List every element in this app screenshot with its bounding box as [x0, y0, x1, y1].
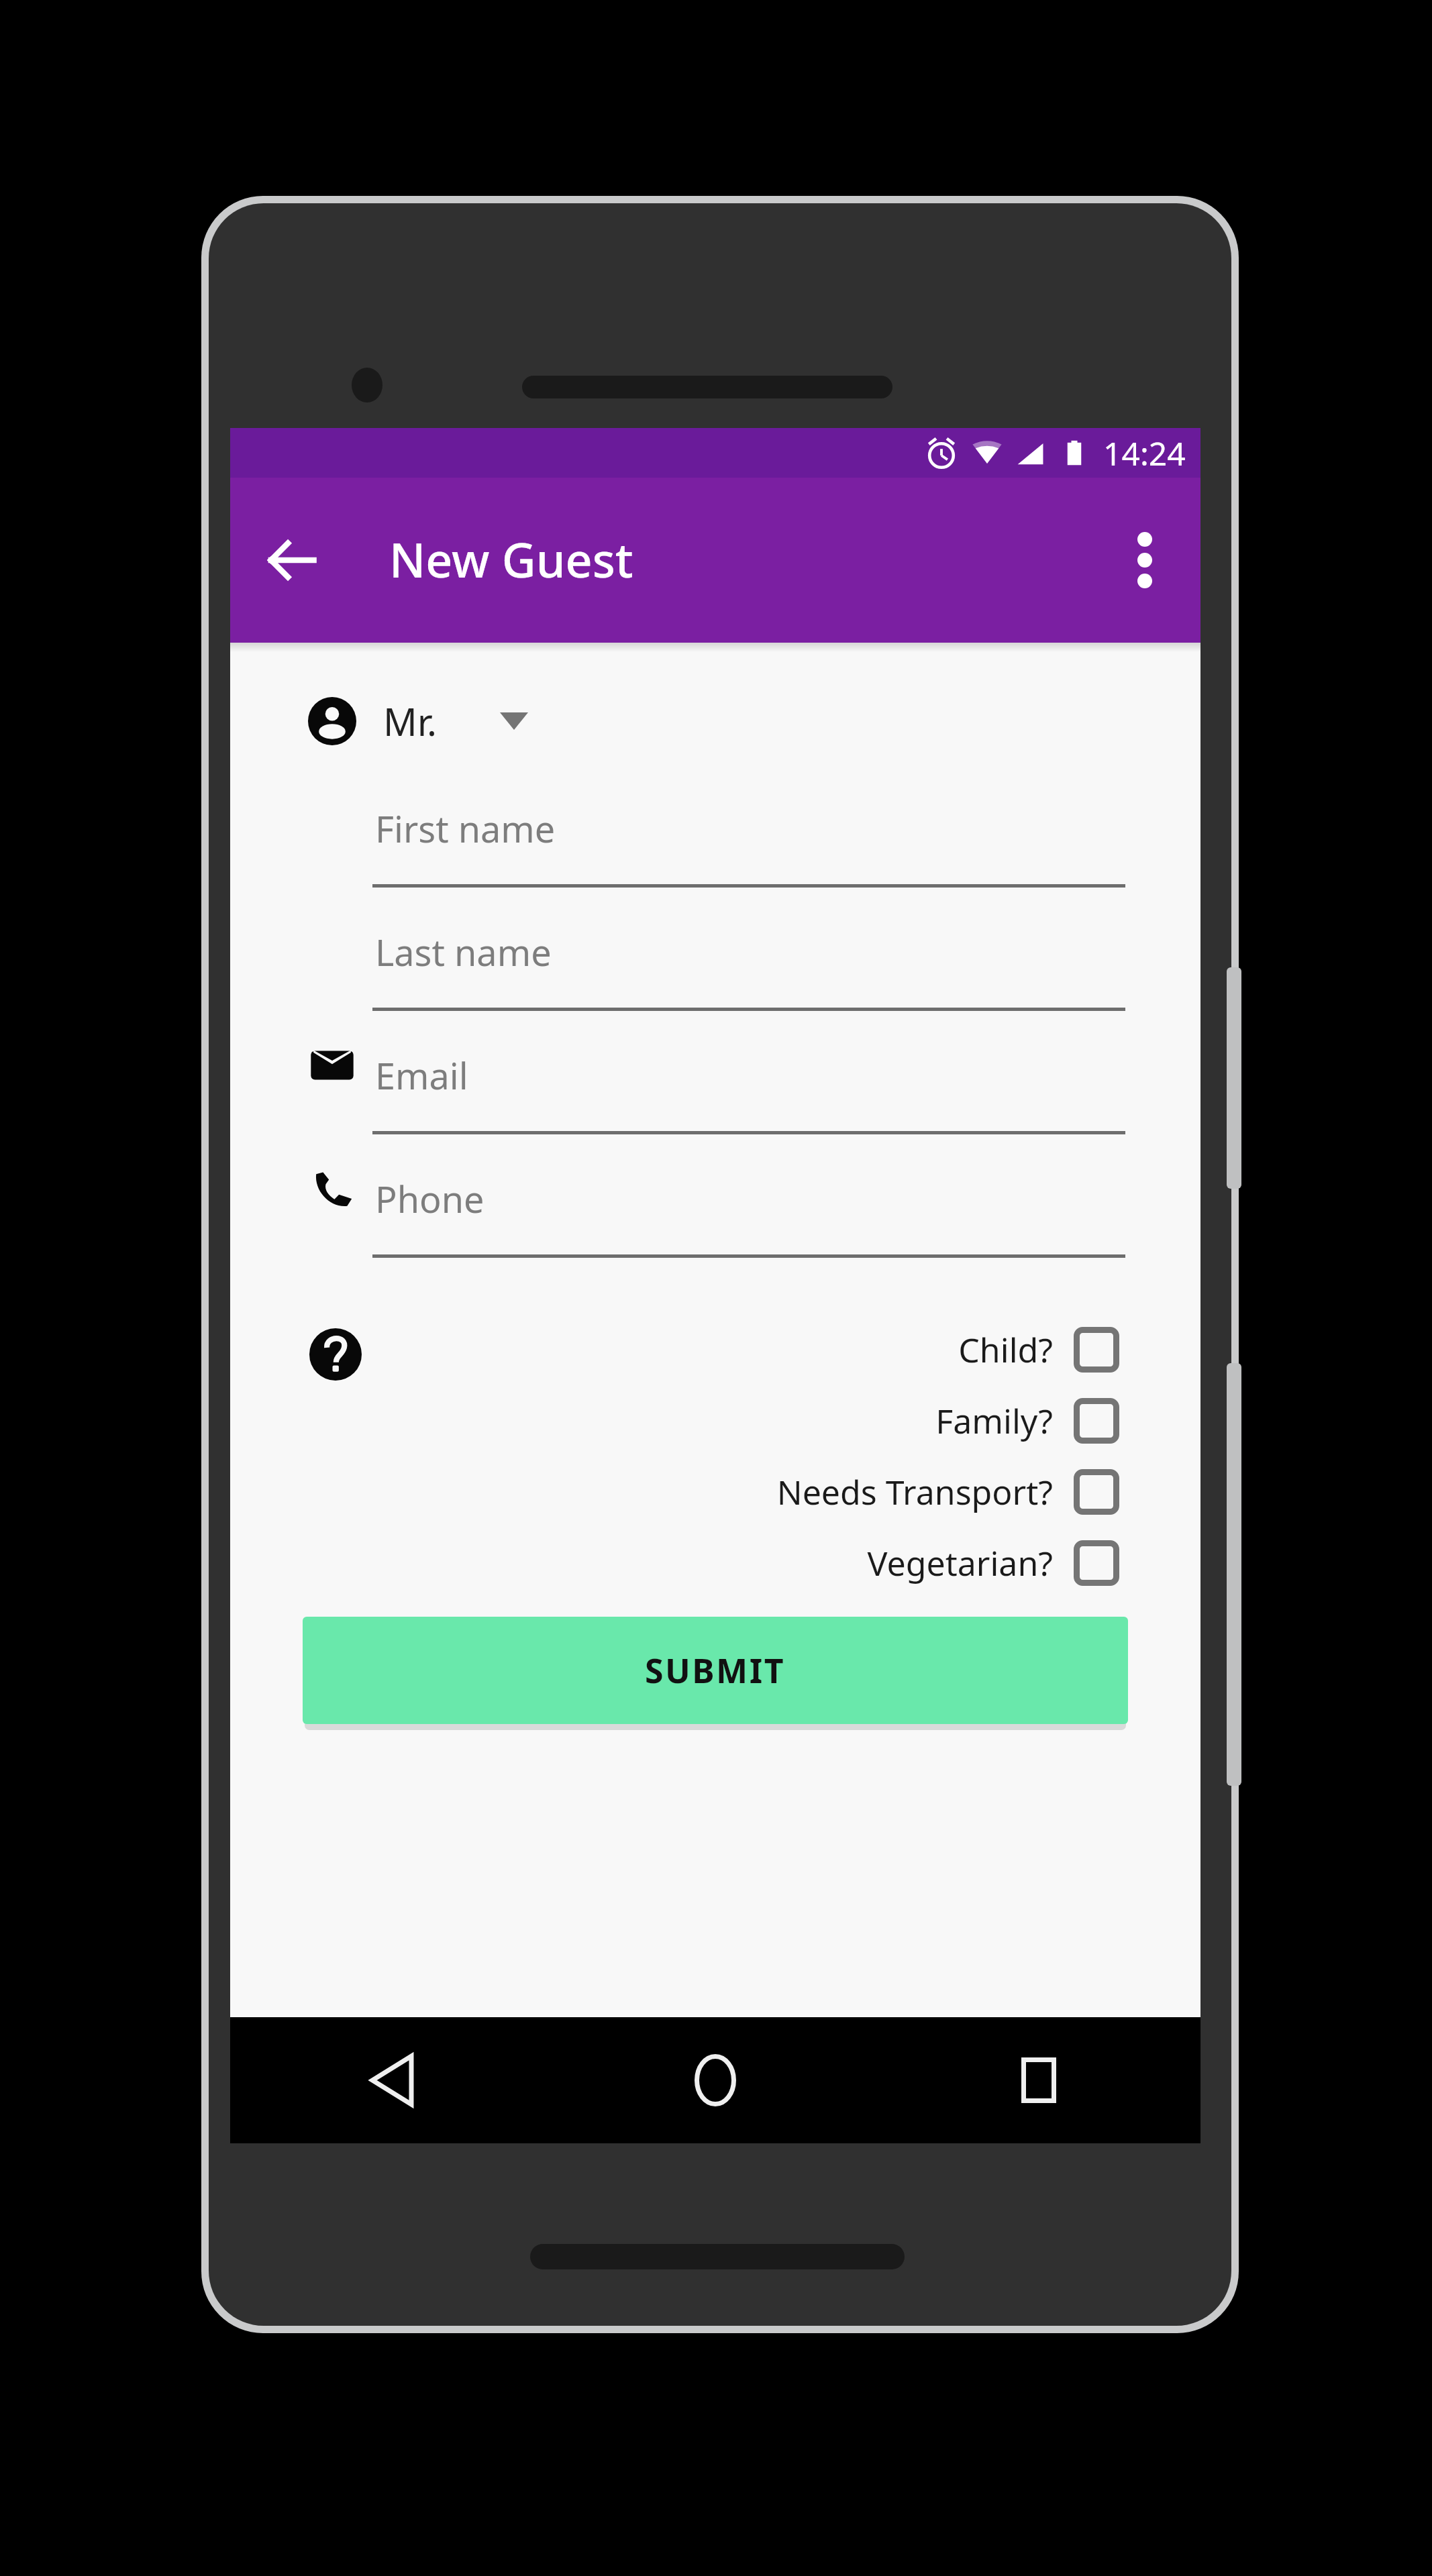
- staticText: 14:24: [1103, 431, 1186, 475]
- button[interactable]: Mr.: [308, 684, 657, 758]
- button[interactable]: Child?: [230, 1318, 1200, 1382]
- button[interactable]: Needs Transport?: [230, 1460, 1200, 1524]
- button[interactable]: Phone: [372, 1154, 1125, 1258]
- button[interactable]: More options: [1101, 517, 1188, 604]
- staticText: New Guest: [389, 527, 633, 591]
- staticText: Needs Transport?: [776, 1469, 1053, 1515]
- button[interactable]: SUBMIT: [303, 1617, 1128, 1724]
- button[interactable]: Last name: [372, 907, 1125, 1012]
- button[interactable]: Vegetarian?: [230, 1531, 1200, 1595]
- staticText: Last name: [375, 927, 552, 977]
- staticText: Vegetarian?: [867, 1540, 1053, 1586]
- staticText: Family?: [935, 1398, 1053, 1444]
- button[interactable]: Back: [230, 2017, 554, 2143]
- button[interactable]: Navigate up: [245, 513, 339, 607]
- button[interactable]: Home: [554, 2017, 877, 2143]
- staticText: Child?: [958, 1327, 1053, 1373]
- button[interactable]: Email: [372, 1030, 1125, 1135]
- staticText: Phone: [375, 1174, 484, 1224]
- staticText: Mr.: [383, 696, 437, 747]
- staticText: SUBMIT: [645, 1648, 786, 1693]
- button[interactable]: Recent apps: [877, 2017, 1200, 2143]
- button[interactable]: First name: [372, 784, 1125, 888]
- button[interactable]: Family?: [230, 1389, 1200, 1453]
- staticText: First name: [375, 804, 556, 853]
- staticText: Email: [375, 1051, 468, 1100]
